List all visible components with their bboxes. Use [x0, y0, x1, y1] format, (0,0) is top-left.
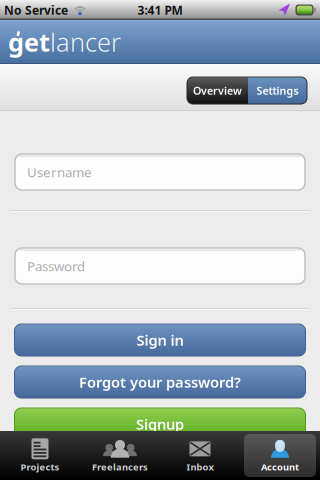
- button[interactable]: Sign in: [14, 324, 305, 356]
- button[interactable]: Signup: [14, 408, 305, 440]
- staticText: Account: [261, 461, 299, 473]
- staticText: Signup: [136, 414, 184, 434]
- staticText: No Service: [4, 2, 68, 18]
- button[interactable]: Settings: [248, 77, 307, 104]
- staticText: Password: [27, 257, 85, 275]
- button[interactable]: Overview: [187, 77, 248, 104]
- button[interactable]: Forgot your password?: [14, 366, 305, 398]
- button[interactable]: Password: [15, 248, 305, 284]
- button[interactable]: Account: [240, 431, 320, 480]
- staticText: lancer: [50, 25, 121, 59]
- staticText: Projects: [20, 461, 59, 473]
- button[interactable]: Freelancers: [80, 431, 160, 480]
- staticText: Freelancers: [92, 461, 148, 473]
- staticText: Forgot your password?: [79, 372, 241, 392]
- staticText: Username: [27, 163, 92, 181]
- button[interactable]: Inbox: [160, 431, 240, 480]
- button[interactable]: Projects: [0, 431, 80, 480]
- staticText: get: [8, 25, 50, 59]
- staticText: Settings: [256, 83, 298, 98]
- staticText: 3:41 PM: [137, 2, 182, 18]
- button[interactable]: Username: [15, 154, 305, 190]
- staticText: Inbox: [186, 461, 213, 473]
- staticText: Overview: [193, 83, 242, 98]
- staticText: Sign in: [136, 330, 183, 350]
